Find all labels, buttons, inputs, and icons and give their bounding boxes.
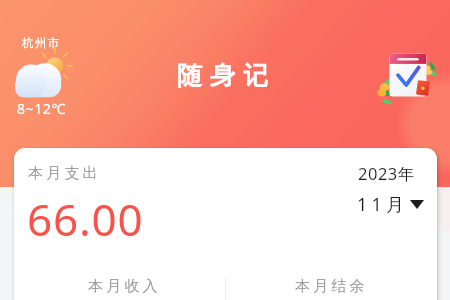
staticText: 杭州市 (22, 36, 61, 50)
staticText: 8~12℃ (17, 99, 66, 118)
staticText: 本月收入 (88, 277, 161, 296)
staticText: 11月 (357, 192, 409, 217)
button[interactable]: 本月结余 (226, 255, 437, 300)
button[interactable]: Bookkeeping checklist (376, 44, 442, 106)
button[interactable]: 杭州市 (10, 36, 72, 118)
button[interactable]: 本月收入 (14, 255, 225, 300)
button[interactable]: 2023年 (339, 160, 425, 217)
staticText: 本月结余 (295, 277, 368, 296)
staticText: 66.00 (27, 189, 144, 249)
staticText: 随身记 (173, 60, 272, 91)
staticText: 2023年 (358, 162, 415, 185)
staticText: 本月支出 (28, 164, 101, 183)
